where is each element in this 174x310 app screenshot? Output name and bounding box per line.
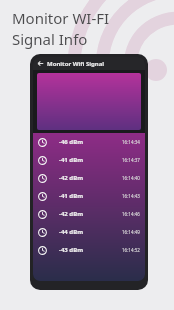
- staticText: 16:14:34: [122, 139, 140, 145]
- staticText: -42 dBm: [59, 174, 83, 182]
- staticText: 16:14:37: [122, 157, 140, 163]
- staticText: -41 dBm: [59, 192, 83, 200]
- staticText: 16:14:40: [122, 175, 140, 181]
- button[interactable]: [37, 73, 141, 130]
- staticText: -43 dBm: [59, 246, 83, 254]
- button[interactable]: Back: [33, 57, 47, 70]
- staticText: Monitor WI-FI: [12, 8, 110, 28]
- button[interactable]: -43 dBm: [33, 241, 145, 259]
- button[interactable]: -41 dBm: [33, 187, 145, 205]
- staticText: -44 dBm: [59, 228, 83, 236]
- staticText: Monitor Wifi Signal: [47, 60, 105, 68]
- staticText: 16:14:46: [122, 211, 140, 217]
- staticText: 16:14:49: [122, 229, 140, 235]
- staticText: Signal Info: [12, 29, 88, 49]
- staticText: -41 dBm: [59, 156, 83, 164]
- button[interactable]: -41 dBm: [33, 151, 145, 169]
- button[interactable]: -42 dBm: [33, 169, 145, 187]
- button[interactable]: -46 dBm: [33, 133, 145, 151]
- button[interactable]: -42 dBm: [33, 205, 145, 223]
- staticText: -42 dBm: [59, 210, 83, 218]
- button[interactable]: -44 dBm: [33, 223, 145, 241]
- staticText: -46 dBm: [59, 138, 83, 146]
- staticText: 16:14:52: [122, 247, 140, 253]
- staticText: 16:14:43: [122, 193, 140, 199]
